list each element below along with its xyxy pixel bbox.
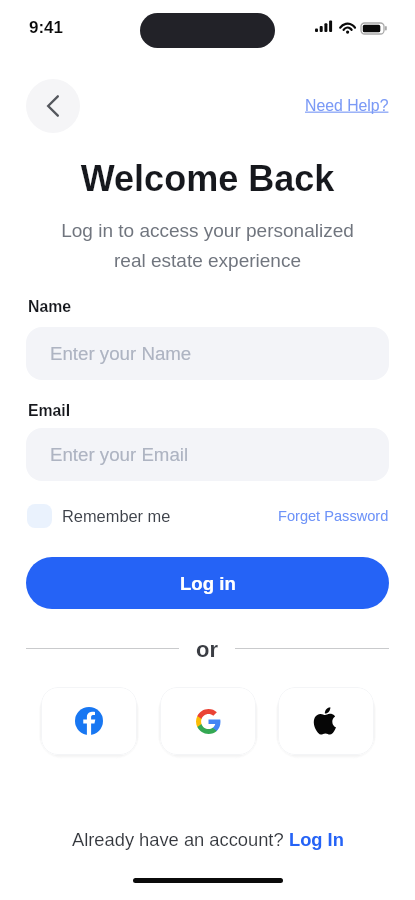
staticText: Log in to access your personalized real … xyxy=(0,220,415,271)
staticText: Remember me xyxy=(62,507,171,525)
staticText: Log in xyxy=(180,573,236,594)
button[interactable]: Back xyxy=(26,79,80,133)
staticText: Enter your Email xyxy=(50,444,189,465)
button[interactable]: Need Help? xyxy=(305,97,389,115)
button[interactable]: Sign in with Google xyxy=(160,687,256,755)
staticText: or xyxy=(196,637,218,659)
staticText: Email xyxy=(28,402,71,420)
staticText: Enter your Name xyxy=(50,343,192,364)
staticText: Welcome Back xyxy=(0,158,415,198)
button[interactable]: Enter your Email xyxy=(26,428,389,481)
staticText: Name xyxy=(28,298,72,316)
button[interactable]: Log in xyxy=(26,557,389,609)
button[interactable]: Sign in with Facebook xyxy=(41,687,137,755)
button[interactable]: Enter your Name xyxy=(26,327,389,380)
staticText: Already have an account? xyxy=(72,829,289,849)
button[interactable]: Log In xyxy=(289,829,344,849)
button[interactable]: Forget Password xyxy=(278,508,389,524)
staticText: 9:41 xyxy=(29,18,64,37)
button[interactable]: Sign in with Apple xyxy=(278,687,374,755)
button[interactable]: Remember me xyxy=(26,504,171,528)
